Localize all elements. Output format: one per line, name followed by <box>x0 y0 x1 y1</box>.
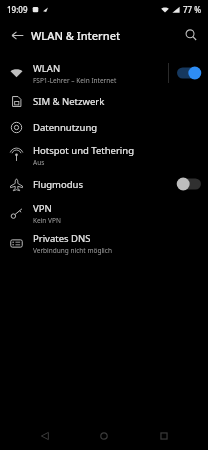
staticText: WLAN & Internet <box>31 28 121 43</box>
button[interactable]: Back <box>6 24 28 46</box>
staticText: Kein VPN <box>33 216 61 225</box>
button[interactable]: Datennutzung <box>0 114 208 140</box>
staticText: Verbindung nicht möglich <box>33 246 112 255</box>
staticText: Flugmodus <box>33 178 83 191</box>
staticText: Hotspot und Tethering <box>33 144 135 157</box>
button[interactable]: Home <box>89 422 119 450</box>
button[interactable]: Flugmodus <box>0 170 208 198</box>
staticText: Aus <box>33 158 45 167</box>
staticText: 77 % <box>183 4 202 15</box>
button[interactable]: VPN <box>0 198 208 228</box>
staticText: VPN <box>33 202 52 215</box>
button[interactable]: Recent apps <box>149 422 179 450</box>
button[interactable]: WLAN <box>0 58 208 88</box>
staticText: Privates DNS <box>33 232 91 245</box>
button[interactable]: Toggle off <box>176 175 202 193</box>
button[interactable]: Toggle on <box>176 64 202 82</box>
button[interactable]: SIM & Netzwerk <box>0 88 208 114</box>
staticText: WLAN <box>33 62 61 75</box>
staticText: SIM & Netzwerk <box>33 95 105 108</box>
staticText: FSP1-Lehrer – Kein Internet <box>33 76 117 85</box>
button[interactable]: Search <box>180 24 202 46</box>
button[interactable]: Back <box>30 422 60 450</box>
button[interactable]: Privates DNS <box>0 228 208 258</box>
staticText: 19:09 <box>7 4 28 15</box>
button[interactable]: Hotspot und Tethering <box>0 140 208 170</box>
staticText: Datennutzung <box>33 121 98 134</box>
